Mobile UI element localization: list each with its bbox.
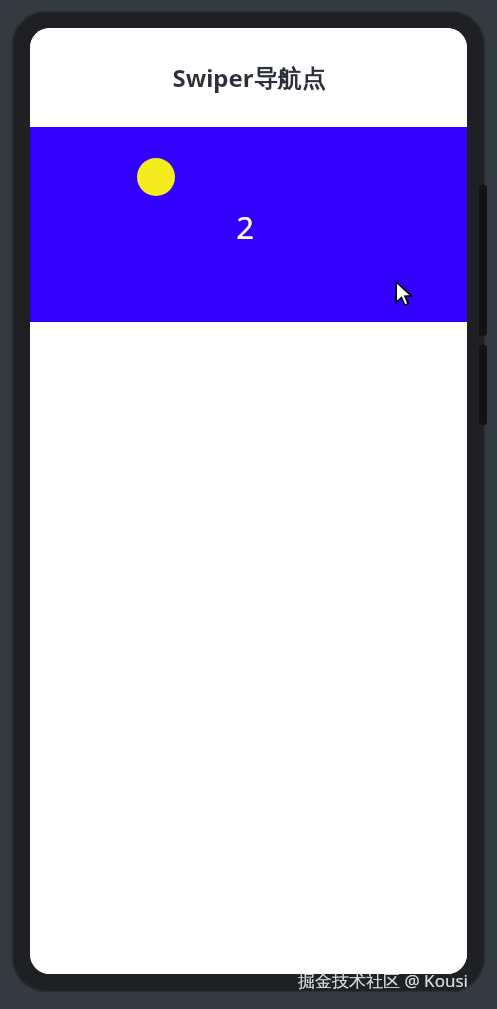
- button[interactable]: Navigation dot: [30, 127, 467, 322]
- staticText: 2: [236, 206, 254, 248]
- button[interactable]: Navigation dot: [137, 158, 175, 196]
- staticText: 掘金技术社区 @ Kousi: [298, 969, 468, 992]
- staticText: Swiper导航点: [172, 61, 326, 94]
- button[interactable]: Swiper导航点: [30, 28, 467, 127]
